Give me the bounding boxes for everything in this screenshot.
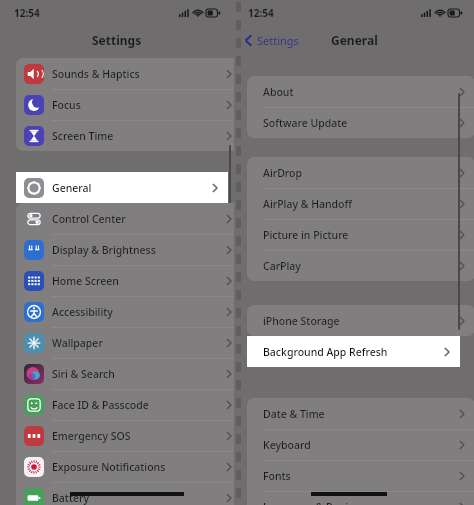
staticText: Display & Brightness [52,243,156,257]
staticText: Siri & Search [52,367,115,381]
staticText: Accessibility [52,305,113,319]
staticText: About [263,85,294,99]
staticText: Emergency SOS [52,429,131,443]
staticText: Focus [52,98,81,112]
button[interactable]: AirDrop [247,157,474,188]
button[interactable]: Face ID & Passcode [16,389,242,420]
staticText: AirPlay & Handoff [263,197,352,211]
staticText: Fonts [263,469,291,483]
staticText: Home Screen [52,274,119,288]
staticText: CarPlay [263,259,301,273]
staticText: iPhone Storage [263,314,340,328]
staticText: Language & Region [263,500,362,505]
button[interactable]: Siri & Search [16,358,242,389]
button[interactable]: AirPlay & Handoff [247,188,474,219]
button[interactable]: Battery [16,482,242,505]
button[interactable]: Background App Refresh [247,336,460,367]
button[interactable]: Exposure Notifications [16,451,242,482]
button[interactable]: Fonts [247,460,474,491]
staticText: 12:54 [14,6,40,20]
button[interactable]: Language & Region [247,491,474,505]
button[interactable]: Accessibility [16,296,242,327]
staticText: AirDrop [263,166,302,180]
staticText: General [52,181,92,195]
staticText: Sounds & Haptics [52,67,140,81]
button[interactable]: About [247,76,474,107]
button[interactable]: Home Screen [16,265,242,296]
staticText: Exposure Notifications [52,460,166,474]
button[interactable]: Wallpaper [16,327,242,358]
staticText: Settings [92,32,142,48]
button[interactable]: Control Center [16,203,242,234]
staticText: Wallpaper [52,336,103,350]
staticText: Background App Refresh [263,345,388,359]
button[interactable]: Date & Time [247,398,474,429]
button[interactable]: CarPlay [247,250,474,281]
staticText: Control Center [52,212,126,226]
staticText: Battery [52,491,89,505]
button[interactable]: Picture in Picture [247,219,474,250]
button[interactable]: Sounds & Haptics [16,58,242,89]
button[interactable]: Settings [242,30,301,51]
staticText: General [331,32,378,48]
staticText: Date & Time [263,407,325,421]
button[interactable]: Display & Brightness [16,234,242,265]
staticText: 12:54 [248,6,274,20]
staticText: Screen Time [52,129,114,143]
staticText: Settings [257,33,299,48]
button[interactable]: Emergency SOS [16,420,242,451]
staticText: Picture in Picture [263,228,349,242]
staticText: Face ID & Passcode [52,398,149,412]
button[interactable]: Focus [16,89,242,120]
button[interactable]: Keyboard [247,429,474,460]
button[interactable]: iPhone Storage [247,305,474,336]
button[interactable]: Screen Time [16,120,242,151]
staticText: Keyboard [263,438,311,452]
button[interactable]: Software Update [247,107,474,138]
button[interactable]: General [16,172,228,203]
staticText: Software Update [263,116,348,130]
